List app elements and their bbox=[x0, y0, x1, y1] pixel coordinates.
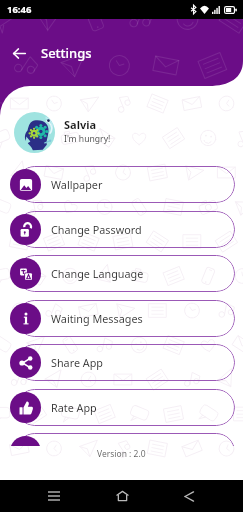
staticText: Salvia bbox=[64, 117, 97, 132]
button[interactable]: Rate App bbox=[16, 389, 235, 426]
button[interactable] bbox=[16, 433, 235, 446]
staticText: 16:46 bbox=[7, 3, 32, 16]
staticText: Wallpaper bbox=[51, 177, 103, 192]
button[interactable]: Waiting Messages bbox=[16, 300, 235, 337]
staticText: Waiting Messages bbox=[51, 311, 143, 326]
staticText: Change Language bbox=[51, 266, 144, 281]
button[interactable]: Back bbox=[8, 42, 30, 64]
button[interactable]: Home bbox=[105, 480, 139, 512]
button[interactable]: Change Password bbox=[16, 211, 235, 248]
button[interactable]: Salvia bbox=[14, 112, 243, 153]
staticText: I'm hungry! bbox=[64, 133, 111, 145]
staticText: Share App bbox=[51, 355, 103, 370]
button[interactable]: Share App bbox=[16, 344, 235, 381]
staticText: Change Password bbox=[51, 222, 142, 237]
button[interactable]: Wallpaper bbox=[16, 166, 235, 203]
staticText: Settings bbox=[41, 44, 92, 62]
staticText: Rate App bbox=[51, 400, 97, 415]
staticText: Version : 2.0 bbox=[97, 448, 146, 460]
button[interactable]: Recents bbox=[37, 480, 71, 512]
button[interactable]: Back bbox=[172, 480, 206, 512]
button[interactable]: Change Language bbox=[16, 255, 235, 292]
